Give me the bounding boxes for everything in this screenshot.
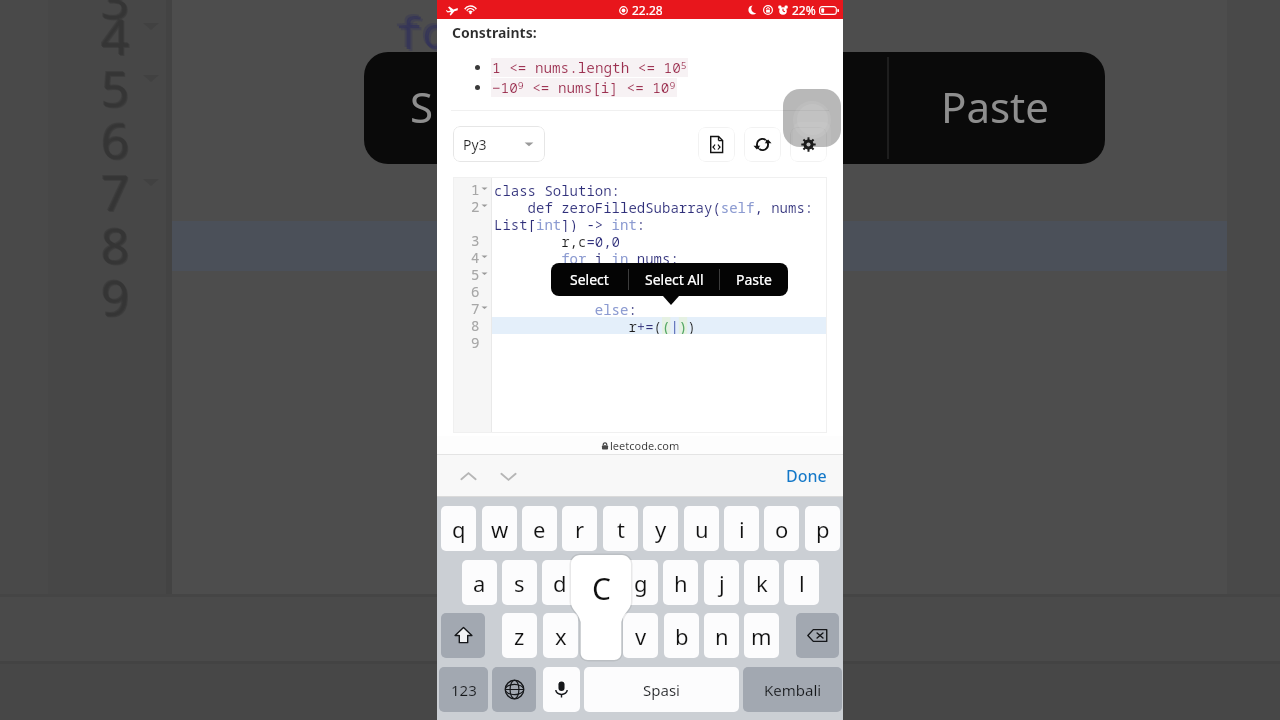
button[interactable]: b [664, 613, 699, 658]
staticText: 6 [102, 107, 131, 175]
button[interactable]: z [502, 613, 537, 658]
button[interactable]: Editor settings [790, 127, 827, 162]
staticText: 5 [101, 54, 130, 122]
staticText: 6 [101, 106, 130, 174]
button[interactable]: Backspace [796, 613, 839, 658]
staticText: x [555, 621, 567, 651]
button[interactable]: Spasi [584, 667, 739, 712]
staticText: 9 [471, 333, 480, 350]
button[interactable]: o [764, 506, 799, 551]
button[interactable]: y [643, 506, 678, 551]
staticText: w [491, 514, 509, 544]
staticText: 4 [101, 2, 130, 70]
staticText: C [592, 568, 611, 609]
staticText: 4 [471, 248, 480, 265]
staticText: 3 [102, 0, 131, 35]
button[interactable]: l [784, 560, 819, 605]
staticText: −109 <= nums[i] <= 109 [492, 78, 676, 97]
button[interactable]: Paste [720, 263, 787, 296]
staticText: class Solution: [494, 181, 620, 198]
button[interactable]: Py3 [453, 126, 545, 162]
button[interactable]: 123 [439, 667, 488, 712]
button[interactable]: Switch keyboard [492, 667, 536, 712]
button[interactable]: v [623, 613, 658, 658]
staticText: 2 [471, 197, 480, 214]
staticText: Paste [736, 270, 772, 289]
button[interactable]: Dictation [543, 667, 580, 712]
staticText: 8 [101, 211, 130, 279]
staticText: 4 [102, 3, 131, 71]
button[interactable]: s [502, 560, 537, 605]
staticText: b [675, 621, 689, 651]
staticText: 5 [102, 55, 131, 123]
button[interactable]: g [623, 560, 658, 605]
button[interactable]: t [603, 506, 638, 551]
staticText: 3 [100, 0, 129, 33]
button[interactable]: m [744, 613, 779, 658]
button[interactable]: Select All [629, 263, 719, 296]
button[interactable]: j [704, 560, 739, 605]
button[interactable]: Kembali [743, 667, 842, 712]
staticText: fo [396, 2, 449, 62]
staticText: u [695, 514, 709, 544]
staticText: 8 [102, 212, 131, 280]
staticText: fo [394, 0, 447, 60]
button[interactable]: e [522, 506, 557, 551]
staticText: Spasi [643, 680, 680, 700]
staticText: 7 [100, 157, 129, 225]
button[interactable]: Previous field [455, 463, 481, 489]
staticText: Py3 [463, 135, 487, 154]
staticText: Constraints: [452, 23, 537, 42]
button[interactable]: n [704, 613, 739, 658]
button[interactable]: p [805, 506, 840, 551]
staticText: 7 [102, 159, 131, 227]
staticText: Done [786, 465, 827, 487]
staticText: q [452, 514, 466, 544]
staticText: o [775, 514, 789, 544]
staticText: y [655, 514, 667, 544]
staticText: 123 [451, 680, 477, 700]
button[interactable]: a [462, 560, 497, 605]
staticText: 1 [471, 180, 480, 197]
staticText: s [514, 568, 525, 598]
button[interactable]: Next field [495, 463, 521, 489]
button[interactable]: d [542, 560, 577, 605]
button[interactable]: k [744, 560, 779, 605]
button[interactable]: f [583, 560, 618, 605]
button[interactable]: w [482, 506, 517, 551]
button[interactable]: Reset code [744, 127, 781, 162]
staticText: 8 [471, 316, 480, 333]
staticText: 3 [471, 231, 480, 248]
button[interactable]: h [663, 560, 698, 605]
staticText: Kembali [764, 680, 822, 700]
staticText: 3 [101, 0, 130, 34]
staticText: m [751, 621, 772, 651]
staticText: t [617, 514, 625, 544]
staticText: for i in nums: [494, 249, 679, 266]
button[interactable]: i [724, 506, 759, 551]
button[interactable]: Done [778, 459, 835, 493]
staticText: Paste [941, 78, 1049, 135]
staticText: 9 [102, 264, 131, 332]
button[interactable]: u [684, 506, 719, 551]
staticText: 5 [100, 53, 129, 121]
staticText: 8 [100, 210, 129, 278]
button[interactable]: Code template [698, 127, 735, 162]
staticText: g [634, 568, 648, 598]
staticText: l [799, 568, 805, 598]
staticText: 6 [471, 282, 480, 299]
button[interactable]: Shift [441, 613, 485, 658]
staticText: 22.28 [632, 2, 663, 18]
staticText: 9 [100, 262, 129, 330]
button[interactable]: r [562, 506, 597, 551]
staticText: p [816, 514, 830, 544]
staticText: 1 <= nums.length <= 105 [492, 58, 687, 77]
button[interactable]: Select [551, 263, 628, 296]
button[interactable]: q [441, 506, 476, 551]
staticText: a [473, 568, 486, 598]
staticText: 5 [471, 265, 480, 282]
staticText: r [575, 514, 585, 544]
button[interactable]: x [543, 613, 578, 658]
